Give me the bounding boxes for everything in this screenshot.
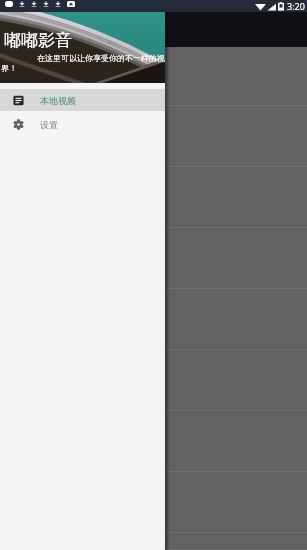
staticText: 本地视频: [40, 95, 76, 106]
button[interactable]: 本地视频: [0, 89, 165, 111]
staticText: 3:20: [287, 0, 305, 12]
button[interactable]: [0, 47, 307, 106]
staticText: 在这里可以让你享受你的不一样的视: [37, 53, 165, 63]
button[interactable]: 设置: [0, 113, 165, 135]
staticText: 设置: [40, 119, 58, 130]
button[interactable]: [0, 106, 307, 167]
button[interactable]: [0, 533, 307, 550]
button[interactable]: [0, 228, 307, 289]
button[interactable]: [0, 167, 307, 228]
staticText: 界！: [1, 63, 17, 73]
button[interactable]: [0, 411, 307, 472]
button[interactable]: [0, 350, 307, 411]
staticText: 嘟嘟影音: [4, 30, 72, 51]
button[interactable]: [0, 472, 307, 533]
button[interactable]: [0, 289, 307, 350]
